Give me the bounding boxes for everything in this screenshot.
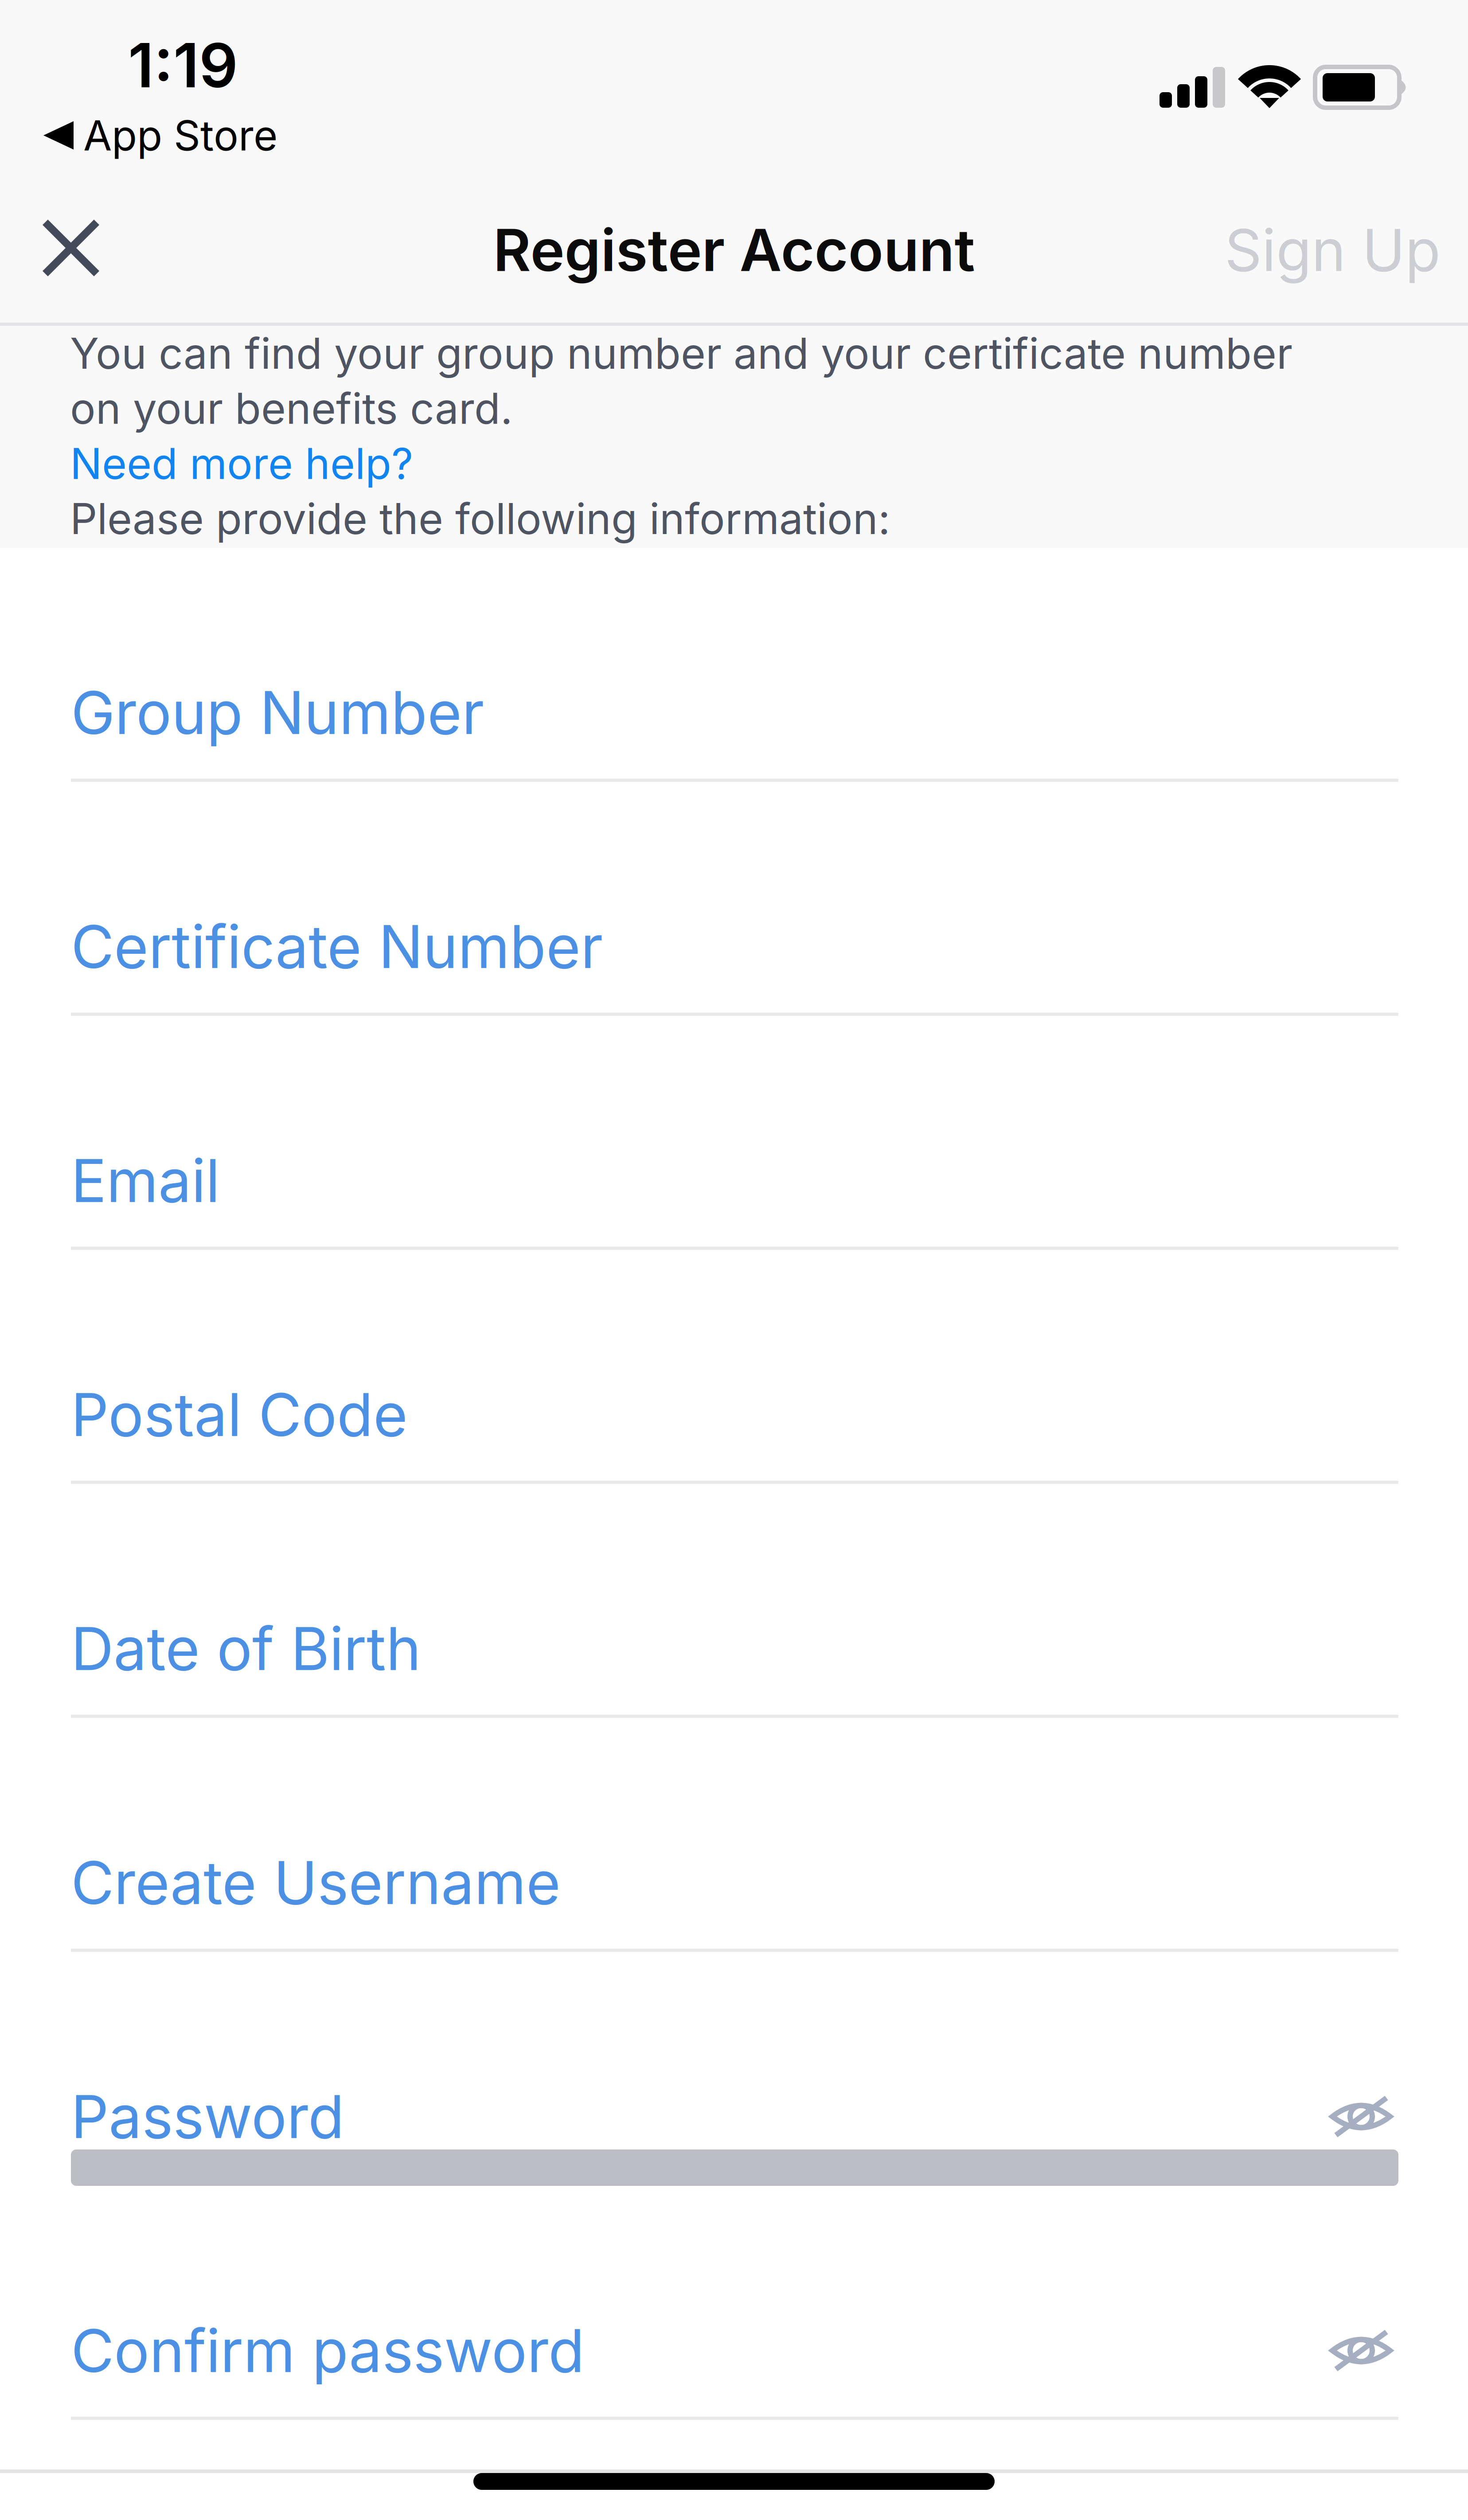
staticText: App Store xyxy=(83,110,277,160)
staticText: 1:19 xyxy=(128,28,238,102)
staticText: Certificate Number xyxy=(71,911,603,982)
button[interactable]: Password xyxy=(0,1952,1468,2186)
button[interactable]: Need more help? xyxy=(70,436,413,491)
staticText: Create Username xyxy=(71,1847,561,1918)
staticText: Date of Birth xyxy=(71,1613,421,1684)
staticText: Sign Up xyxy=(1225,215,1441,285)
staticText: Please provide the following information… xyxy=(70,491,890,546)
staticText: Password xyxy=(71,2081,344,2152)
button[interactable]: Postal Code xyxy=(0,1250,1468,1484)
button[interactable]: Group Number xyxy=(0,548,1468,782)
staticText: Register Account xyxy=(493,215,975,285)
staticText: Group Number xyxy=(71,677,484,748)
staticText: Postal Code xyxy=(71,1379,408,1450)
button[interactable]: Certificate Number xyxy=(0,782,1468,1016)
button[interactable]: Email xyxy=(0,1016,1468,1250)
button[interactable]: Create Username xyxy=(0,1718,1468,1952)
staticText: Confirm password xyxy=(71,2315,585,2386)
button[interactable]: Confirm password xyxy=(0,2186,1468,2420)
staticText: You can find your group number and your … xyxy=(70,326,1292,381)
staticText: Email xyxy=(71,1145,220,1216)
staticText: on your benefits card. xyxy=(70,381,513,436)
button[interactable]: Sign Up xyxy=(1189,177,1468,323)
button[interactable]: Close xyxy=(0,177,135,323)
button[interactable]: Date of Birth xyxy=(0,1484,1468,1718)
staticText: Need more help? xyxy=(70,436,413,491)
